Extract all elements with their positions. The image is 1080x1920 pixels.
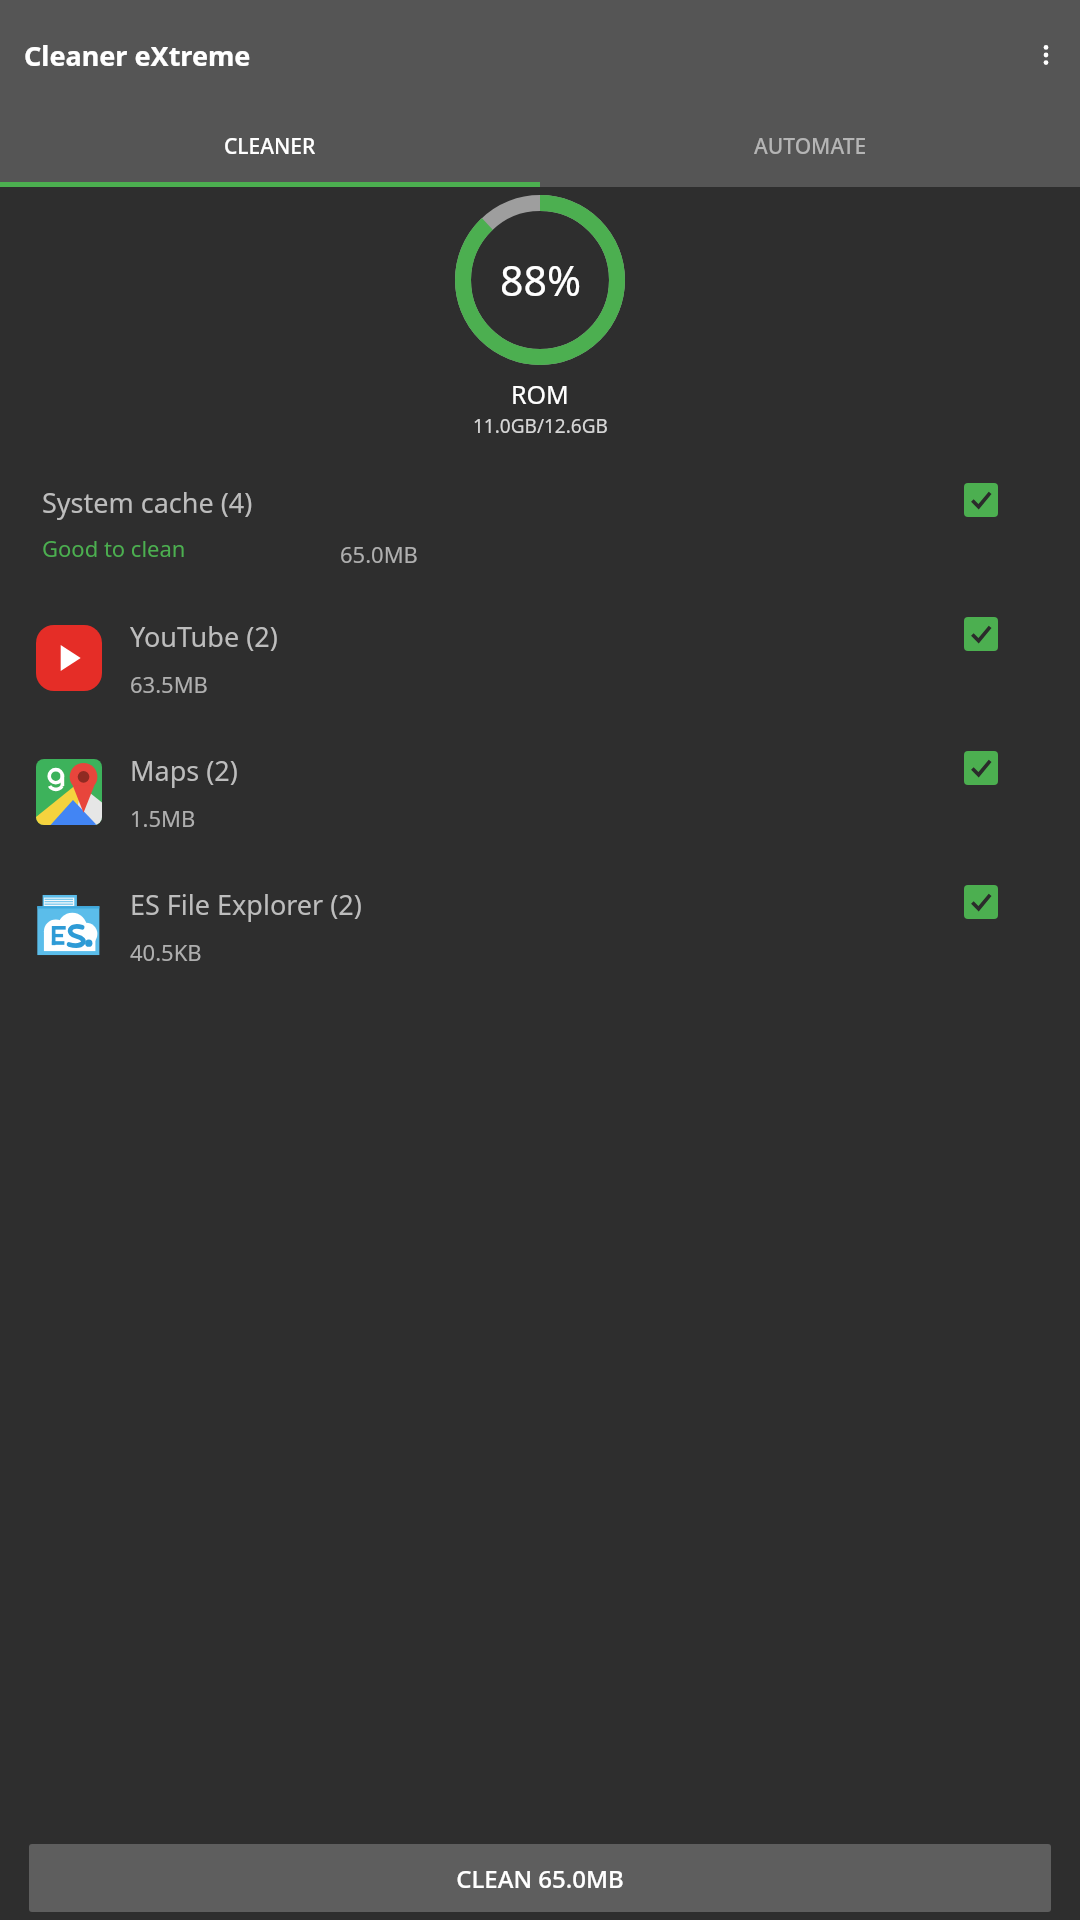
staticText: 63.5MB [130,669,208,699]
staticText: 40.5KB [130,937,202,967]
staticText: AUTOMATE [754,132,867,161]
staticText: YouTube (2) [130,618,278,655]
staticText: Cleaner eXtreme [24,37,251,74]
staticText: ROM [511,377,569,411]
button[interactable]: Selected [964,751,998,785]
button[interactable]: System cache (4) [0,469,1080,577]
button[interactable]: CLEAN 65.0MB [29,1844,1051,1912]
button[interactable]: Selected [964,617,998,651]
staticText: CLEANER [224,132,316,161]
staticText: Maps (2) [130,752,238,789]
button[interactable]: Maps (2) [0,737,1080,847]
button[interactable]: More options [1022,31,1070,79]
staticText: Good to clean [42,533,186,563]
staticText: ES File Explorer (2) [130,886,362,923]
staticText: System cache (4) [42,484,253,521]
staticText: 88% [500,252,581,308]
staticText: 65.0MB [340,539,418,569]
button[interactable]: Selected [964,885,998,919]
button[interactable]: ES File Explorer (2) [0,871,1080,981]
staticText: 11.0GB/12.6GB [473,413,608,439]
staticText: CLEAN 65.0MB [456,1862,624,1895]
button[interactable]: CLEANER [0,110,540,182]
button[interactable]: AUTOMATE [540,110,1080,182]
button[interactable]: Selected [964,483,998,517]
button[interactable]: YouTube (2) [0,603,1080,713]
staticText: 1.5MB [130,803,196,833]
